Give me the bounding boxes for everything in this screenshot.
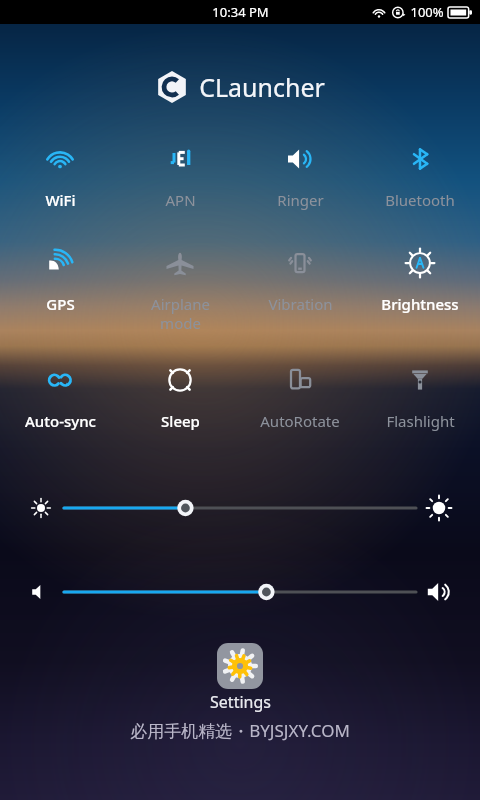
staticText: Airplane mode (151, 294, 210, 333)
staticText: Flashlight (386, 411, 455, 431)
button[interactable]: Auto-sync (0, 359, 120, 435)
staticText: 100% (410, 3, 444, 21)
staticText: 必用手机精选・BYJSJXY.COM (130, 719, 350, 742)
staticText: WiFi (45, 190, 76, 210)
button[interactable]: Flashlight (360, 359, 480, 435)
staticText: Sleep (161, 411, 200, 431)
staticText: GPS (46, 294, 75, 314)
button[interactable]: APN (120, 138, 240, 214)
button[interactable]: Vibration (240, 242, 360, 318)
button[interactable]: Brightness slider (0, 491, 480, 525)
button[interactable]: Airplane mode (120, 242, 240, 337)
staticText: Auto-sync (25, 411, 96, 431)
staticText: Vibration (268, 294, 333, 314)
button[interactable]: GPS (0, 242, 120, 318)
button[interactable]: Settings (217, 643, 263, 689)
button[interactable]: Bluetooth (360, 138, 480, 214)
staticText: APN (165, 190, 196, 210)
button[interactable]: Ringer (240, 138, 360, 214)
staticText: 10:34 PM (212, 3, 269, 21)
staticText: Settings (210, 691, 271, 713)
button[interactable]: WiFi (0, 138, 120, 214)
staticText: AutoRotate (260, 411, 340, 431)
button[interactable]: Volume slider (0, 575, 480, 609)
staticText: Brightness (381, 294, 459, 314)
staticText: Bluetooth (385, 190, 455, 210)
button[interactable]: AutoRotate (240, 359, 360, 435)
button[interactable]: Brightness (360, 242, 480, 318)
staticText: Ringer (277, 190, 324, 210)
button[interactable]: Sleep (120, 359, 240, 435)
staticText: CLauncher (199, 70, 325, 104)
